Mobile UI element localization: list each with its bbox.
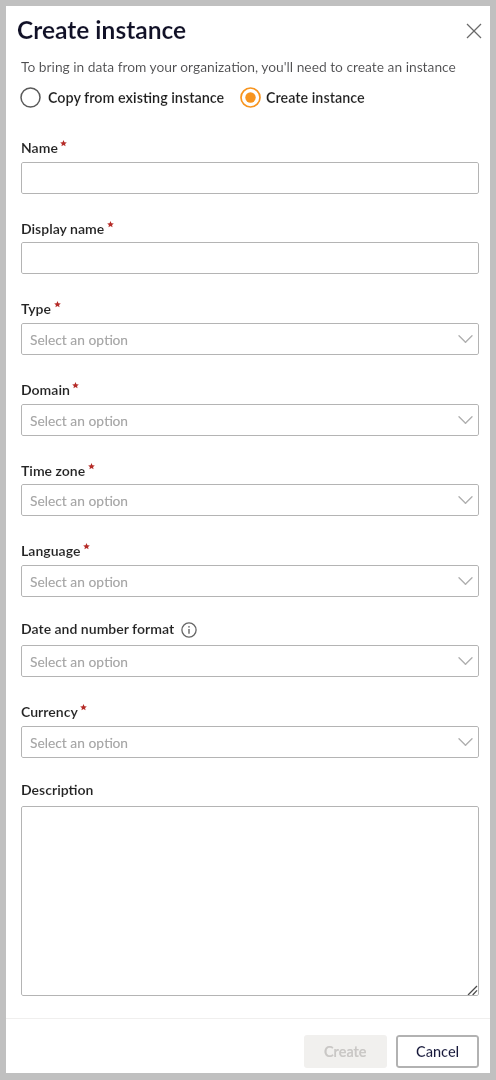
button[interactable]: Select an option <box>21 726 479 758</box>
button[interactable]: Select an option <box>21 565 479 597</box>
staticText: Domain <box>21 381 70 398</box>
button[interactable]: Select an option <box>21 323 479 355</box>
staticText: Create instance <box>17 15 187 44</box>
staticText: Select an option <box>30 412 128 429</box>
staticText: Copy from existing instance <box>48 89 225 106</box>
button[interactable]: Select an option <box>21 404 479 436</box>
staticText: Description <box>21 781 94 798</box>
button[interactable]: Select an option <box>21 484 479 516</box>
staticText: Date and number format <box>21 620 175 637</box>
staticText: Select an option <box>30 573 128 590</box>
staticText: Select an option <box>30 331 128 348</box>
staticText: Display name <box>21 220 105 237</box>
button[interactable]: Select an option <box>21 645 479 677</box>
staticText: Cancel <box>416 1043 460 1060</box>
staticText: Currency <box>21 703 78 720</box>
staticText: Select an option <box>30 734 128 751</box>
button[interactable] <box>21 162 479 194</box>
staticText: Create instance <box>266 89 365 106</box>
staticText: Select an option <box>30 492 128 509</box>
staticText: Create <box>324 1043 367 1060</box>
staticText: Type <box>21 300 52 317</box>
button[interactable]: Create <box>304 1035 387 1068</box>
staticText: Select an option <box>30 653 128 670</box>
button[interactable] <box>21 806 479 996</box>
button[interactable]: Copy from existing instance <box>20 87 225 108</box>
button[interactable]: Close <box>458 15 490 47</box>
staticText: Name <box>21 139 58 156</box>
staticText: Time zone <box>21 462 86 479</box>
button[interactable] <box>21 242 479 274</box>
button[interactable]: Create instance <box>240 87 365 108</box>
staticText: Language <box>21 542 81 559</box>
button[interactable]: Cancel <box>396 1035 479 1068</box>
staticText: To bring in data from your organization,… <box>21 58 456 75</box>
